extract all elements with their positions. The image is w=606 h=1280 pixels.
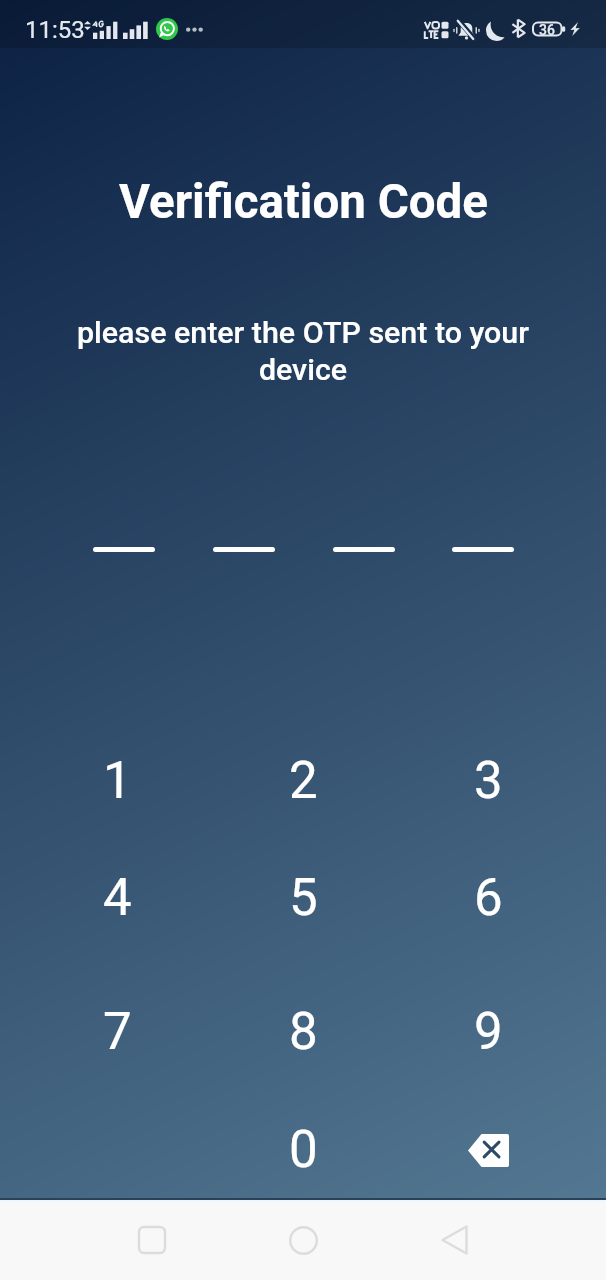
button[interactable]: 0 <box>228 1094 378 1206</box>
button[interactable]: 9 <box>413 976 563 1088</box>
staticText: Verification Code <box>119 174 488 230</box>
button[interactable] <box>333 547 395 552</box>
button[interactable]: 7 <box>42 976 192 1088</box>
button[interactable]: 8 <box>228 976 378 1088</box>
button[interactable]: 6 <box>413 842 563 954</box>
staticText: 11:53 <box>25 16 85 44</box>
staticText: 36 <box>539 22 555 36</box>
button[interactable]: 3 <box>413 725 563 837</box>
button[interactable]: 5 <box>228 842 378 954</box>
staticText: please enter the OTP sent to your device <box>68 315 538 387</box>
staticText: 6 <box>474 868 503 928</box>
button[interactable]: 4 <box>42 842 192 954</box>
button[interactable] <box>213 547 275 552</box>
staticText: 1 <box>103 751 132 811</box>
button[interactable]: Home <box>268 1202 338 1278</box>
staticText: 3 <box>474 751 503 811</box>
button[interactable] <box>452 547 514 552</box>
staticText: 4 <box>103 868 132 928</box>
button[interactable]: 2 <box>228 725 378 837</box>
staticText: 8 <box>289 1002 318 1062</box>
staticText: 9 <box>474 1002 503 1062</box>
button[interactable]: Back <box>419 1202 489 1278</box>
button[interactable]: Recents <box>117 1202 187 1278</box>
button[interactable]: Backspace <box>413 1094 563 1206</box>
staticText: 0 <box>289 1120 318 1180</box>
staticText: 2 <box>289 751 318 811</box>
staticText: 5 <box>289 868 318 928</box>
button[interactable]: 1 <box>42 725 192 837</box>
staticText: 7 <box>103 1002 132 1062</box>
button[interactable] <box>93 547 155 552</box>
